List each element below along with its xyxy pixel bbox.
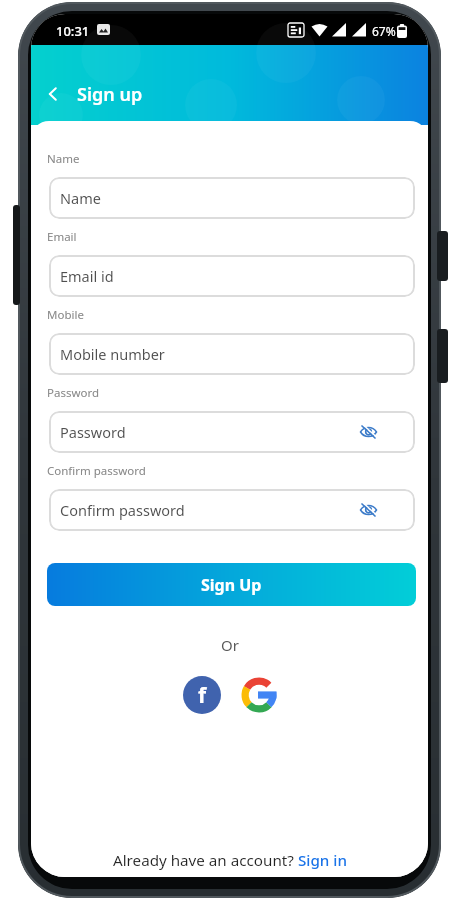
staticText: Or xyxy=(221,635,239,655)
staticText: Sign in xyxy=(298,850,347,871)
button[interactable]: Name xyxy=(49,177,415,219)
button[interactable]: Confirm password xyxy=(49,489,415,531)
staticText: f xyxy=(198,681,207,710)
staticText: Sign Up xyxy=(201,574,262,596)
button[interactable]: Sign Up xyxy=(47,563,416,606)
staticText: Name xyxy=(60,188,101,208)
staticText: Already have an account? xyxy=(113,850,298,871)
staticText: Confirm password xyxy=(60,500,185,520)
staticText: 67% xyxy=(372,23,396,39)
staticText: 10:31 xyxy=(56,22,90,40)
staticText: Password xyxy=(60,422,126,442)
staticText: Confirm password xyxy=(47,463,146,479)
staticText: Email id xyxy=(60,266,114,286)
staticText: Mobile number xyxy=(60,344,165,364)
staticText: Password xyxy=(47,385,100,401)
button[interactable] xyxy=(240,676,278,714)
button[interactable]: Email id xyxy=(49,255,415,297)
button[interactable]: Already have an account? xyxy=(113,850,347,871)
button[interactable]: f xyxy=(183,676,221,714)
staticText: Name xyxy=(47,151,80,167)
button[interactable] xyxy=(46,86,60,102)
staticText: Mobile xyxy=(47,307,84,323)
button[interactable] xyxy=(360,502,377,518)
staticText: Email xyxy=(47,229,77,245)
button[interactable] xyxy=(360,424,377,440)
button[interactable]: Mobile number xyxy=(49,333,415,375)
button[interactable]: Password xyxy=(49,411,415,453)
staticText: Sign up xyxy=(77,82,143,107)
